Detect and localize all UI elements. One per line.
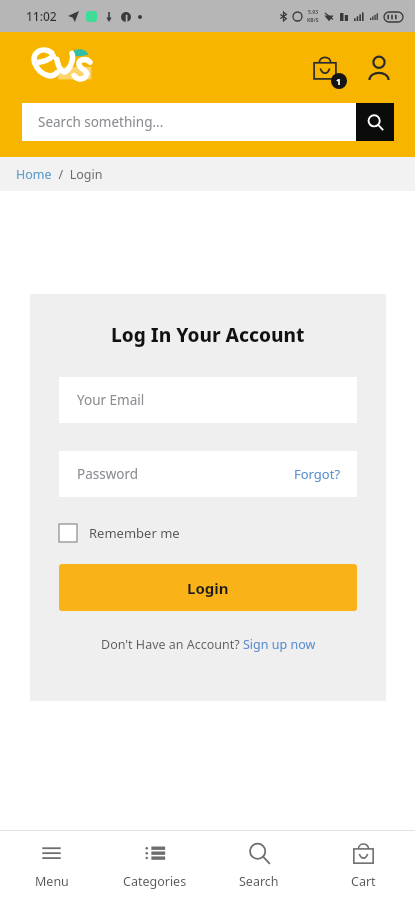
staticText: Menu — [35, 873, 69, 890]
staticText: KB/S — [307, 17, 319, 24]
staticText: Search — [239, 873, 279, 890]
staticText: Remember me — [89, 524, 180, 542]
staticText: Log In Your Account — [111, 322, 305, 348]
staticText: Forgot? — [294, 465, 341, 483]
button[interactable]: Your Email — [59, 377, 357, 423]
staticText: 5.93 — [308, 9, 318, 16]
button[interactable]: Search — [207, 834, 311, 898]
staticText: / Login — [52, 166, 103, 183]
button[interactable]: Menu — [0, 834, 103, 898]
button[interactable]: Account — [359, 48, 399, 88]
button[interactable]: Search something... — [22, 103, 356, 141]
button[interactable]: Login — [59, 564, 357, 611]
button[interactable]: Remember me — [59, 521, 180, 545]
staticText: Categories — [123, 873, 187, 890]
staticText: Password — [77, 465, 139, 483]
staticText: 1 — [336, 75, 342, 87]
button[interactable]: Forgot? — [294, 465, 341, 483]
staticText: Sign up now — [243, 636, 316, 653]
staticText: Your Email — [77, 391, 145, 409]
staticText: Login — [187, 578, 229, 598]
button[interactable]: Categories — [103, 834, 207, 898]
button[interactable]: Cart — [311, 834, 415, 898]
button[interactable]: Password — [59, 451, 357, 497]
button[interactable]: Search — [356, 103, 394, 141]
staticText: Cart — [351, 873, 376, 890]
button[interactable]: Evs home — [28, 40, 100, 88]
staticText: Search something... — [38, 113, 164, 131]
button[interactable]: Sign up now — [243, 636, 316, 653]
button[interactable]: Cart with 1 item — [305, 48, 345, 88]
staticText: 11:02 — [26, 8, 57, 24]
staticText: Home — [16, 166, 52, 183]
button[interactable]: Home — [16, 166, 52, 183]
staticText: Don't Have an Account? — [101, 636, 243, 653]
